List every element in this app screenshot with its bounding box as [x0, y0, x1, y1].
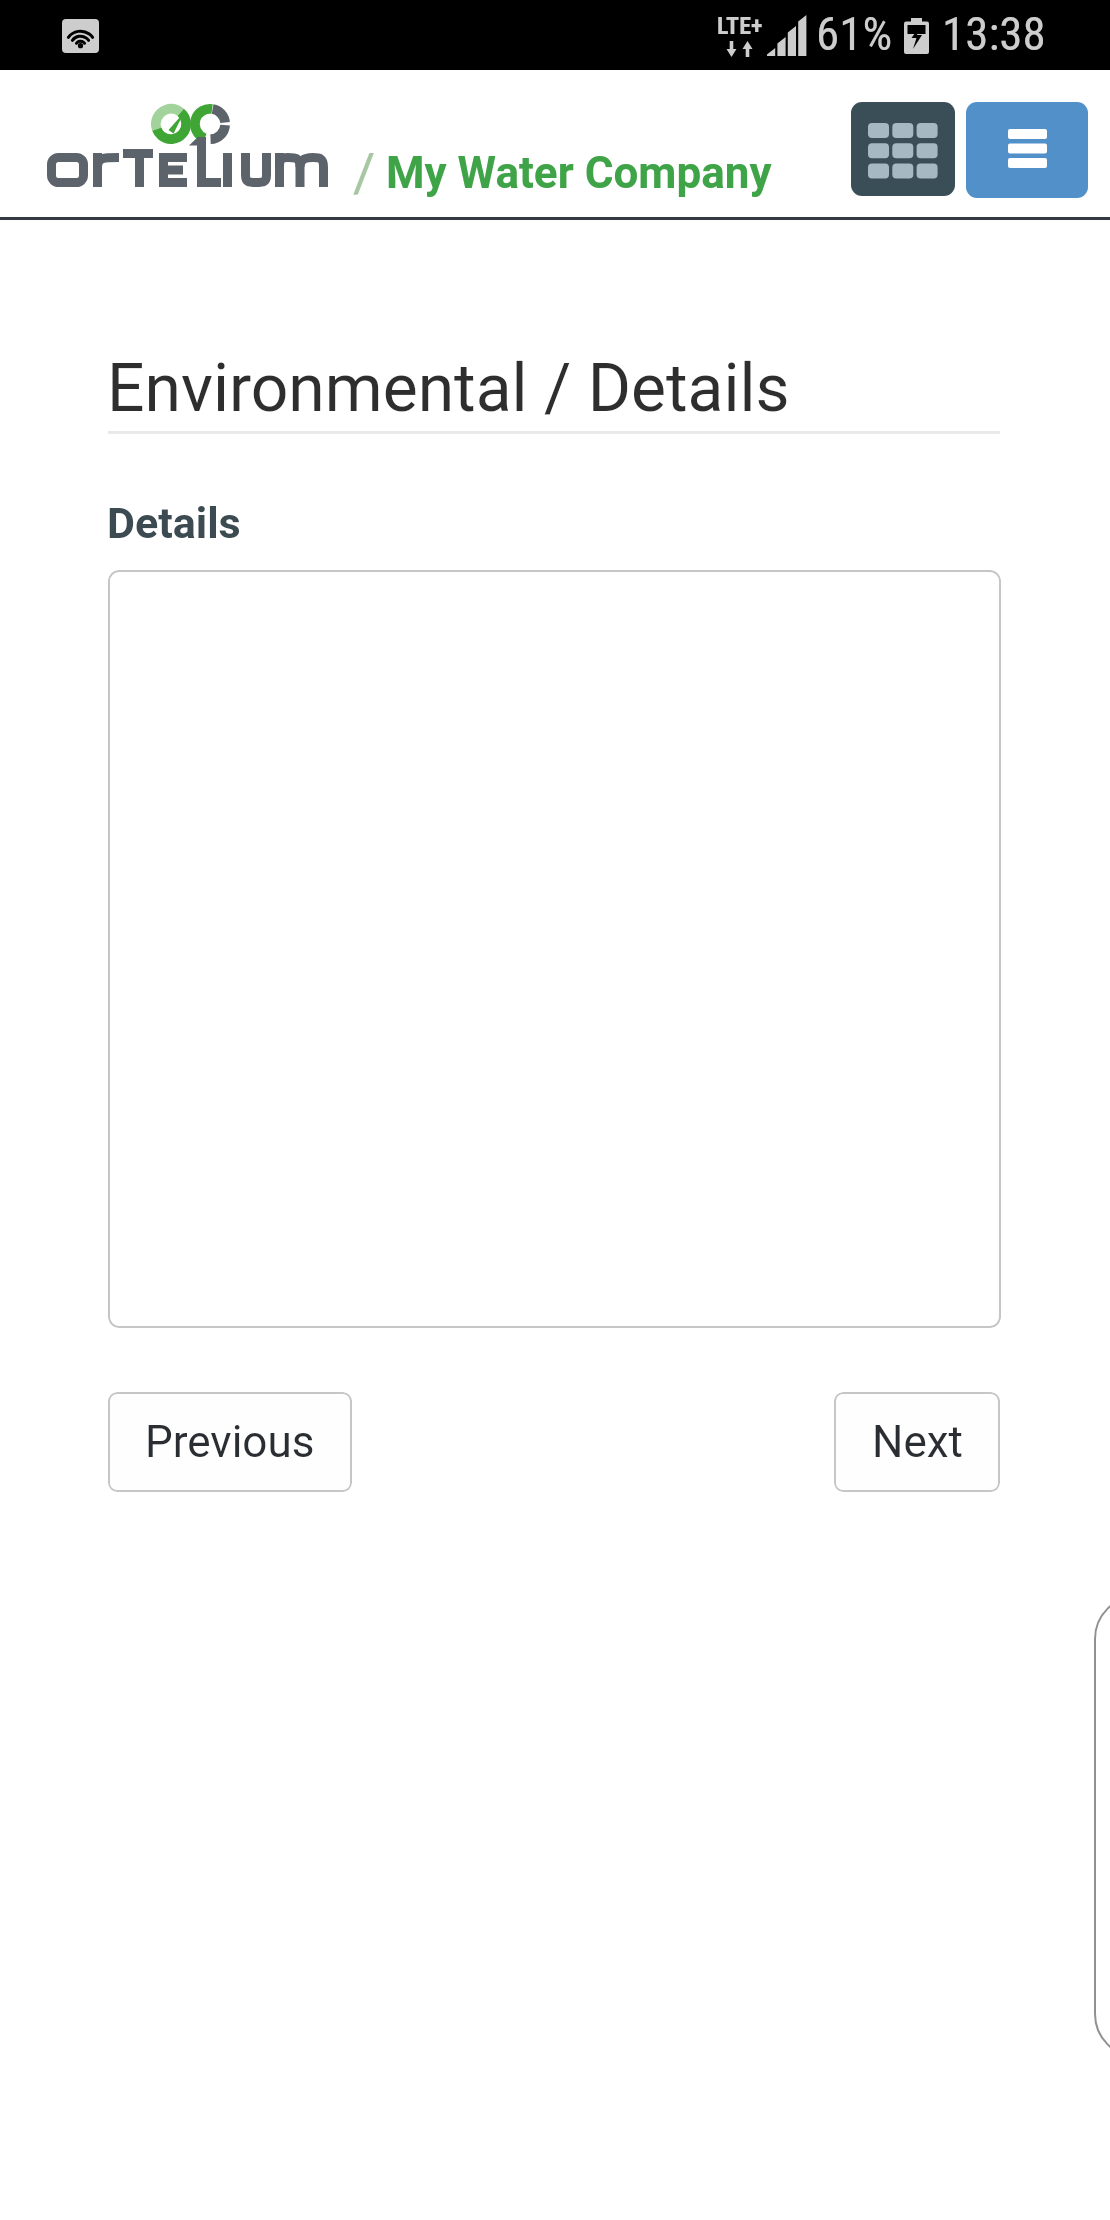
button[interactable]: Menu — [966, 102, 1088, 198]
staticText: 61% — [816, 6, 893, 61]
staticText: Previous — [145, 1416, 315, 1468]
staticText: Details — [107, 498, 241, 548]
staticText: 13:38 — [942, 6, 1046, 61]
button[interactable]: Previous — [108, 1392, 352, 1492]
button[interactable]: Next — [834, 1392, 1000, 1492]
button[interactable]: Apps — [851, 102, 955, 196]
staticText: Environmental / Details — [107, 350, 790, 427]
staticText: LTE+ — [717, 12, 763, 40]
button[interactable]: Details text area — [108, 570, 1001, 1328]
staticText: / — [353, 141, 376, 204]
staticText: Next — [872, 1416, 963, 1468]
staticText: My Water Company — [386, 147, 772, 199]
